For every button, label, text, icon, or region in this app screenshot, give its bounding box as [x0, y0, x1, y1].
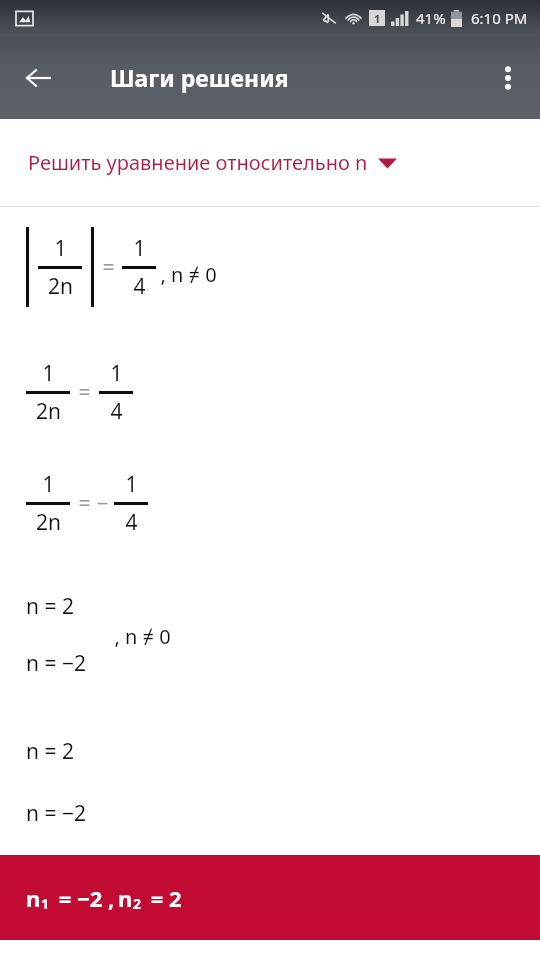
staticText: 2n	[48, 272, 73, 301]
staticText: 6:10 PM	[471, 8, 528, 28]
staticText: n = 2	[26, 737, 74, 766]
staticText: n	[26, 883, 41, 913]
staticText: 2	[133, 894, 142, 913]
staticText: , n ≠ 0	[160, 261, 217, 288]
staticText: n = −2	[26, 649, 86, 678]
staticText: n = 2	[26, 592, 74, 621]
staticText: 1	[41, 894, 50, 913]
staticText: = −2 ,	[53, 883, 115, 913]
staticText: Шаги решения	[110, 62, 289, 93]
staticText: 1	[125, 470, 138, 499]
staticText: n = −2	[26, 799, 86, 828]
staticText: =	[102, 253, 115, 282]
staticText: 1	[54, 234, 67, 263]
staticText: =	[78, 489, 91, 518]
staticText: 1	[374, 11, 381, 26]
staticText: Решить уравнение относительно n	[28, 149, 368, 176]
staticText: 4	[110, 397, 123, 426]
button[interactable]: n	[0, 855, 540, 940]
staticText: −	[96, 489, 109, 518]
staticText: 1	[133, 234, 146, 263]
button[interactable]: Back	[14, 54, 62, 102]
staticText: 4	[133, 272, 146, 301]
staticText: 2n	[36, 397, 61, 426]
staticText: 1	[110, 359, 123, 388]
staticText: 1	[42, 359, 55, 388]
button[interactable]: Решить уравнение относительно n	[0, 119, 540, 206]
staticText: 4	[125, 508, 138, 537]
staticText: =	[78, 378, 91, 407]
staticText: , n ≠ 0	[114, 623, 171, 650]
staticText: 2n	[36, 508, 61, 537]
staticText: 1	[42, 470, 55, 499]
staticText: n	[118, 883, 133, 913]
staticText: = 2	[145, 883, 182, 913]
staticText: 41%	[416, 8, 446, 28]
button[interactable]: More options	[484, 54, 532, 102]
